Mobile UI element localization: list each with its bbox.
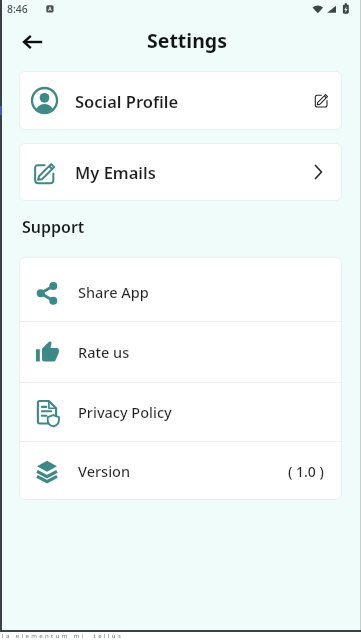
button[interactable]: My Emails	[19, 143, 342, 201]
staticText: Version	[78, 461, 130, 481]
button[interactable]: Rate us	[19, 322, 342, 382]
staticText: Support	[22, 216, 85, 238]
staticText: Privacy Policy	[78, 402, 172, 422]
button[interactable]: Social Profile	[19, 71, 342, 130]
button[interactable]	[15, 24, 51, 60]
staticText: 8:46	[7, 2, 28, 16]
staticText: Rate us	[78, 342, 130, 362]
staticText: My Emails	[75, 161, 156, 183]
button[interactable]: Privacy Policy	[19, 383, 342, 441]
staticText: ( 1.0 )	[288, 462, 324, 481]
staticText: Settings	[147, 27, 227, 54]
button[interactable]: Share App	[19, 257, 342, 321]
staticText: Social Profile	[75, 90, 179, 112]
staticText: la elementum mi tellus	[2, 632, 124, 640]
staticText: Share App	[78, 282, 149, 302]
button[interactable]: Version	[19, 442, 342, 500]
